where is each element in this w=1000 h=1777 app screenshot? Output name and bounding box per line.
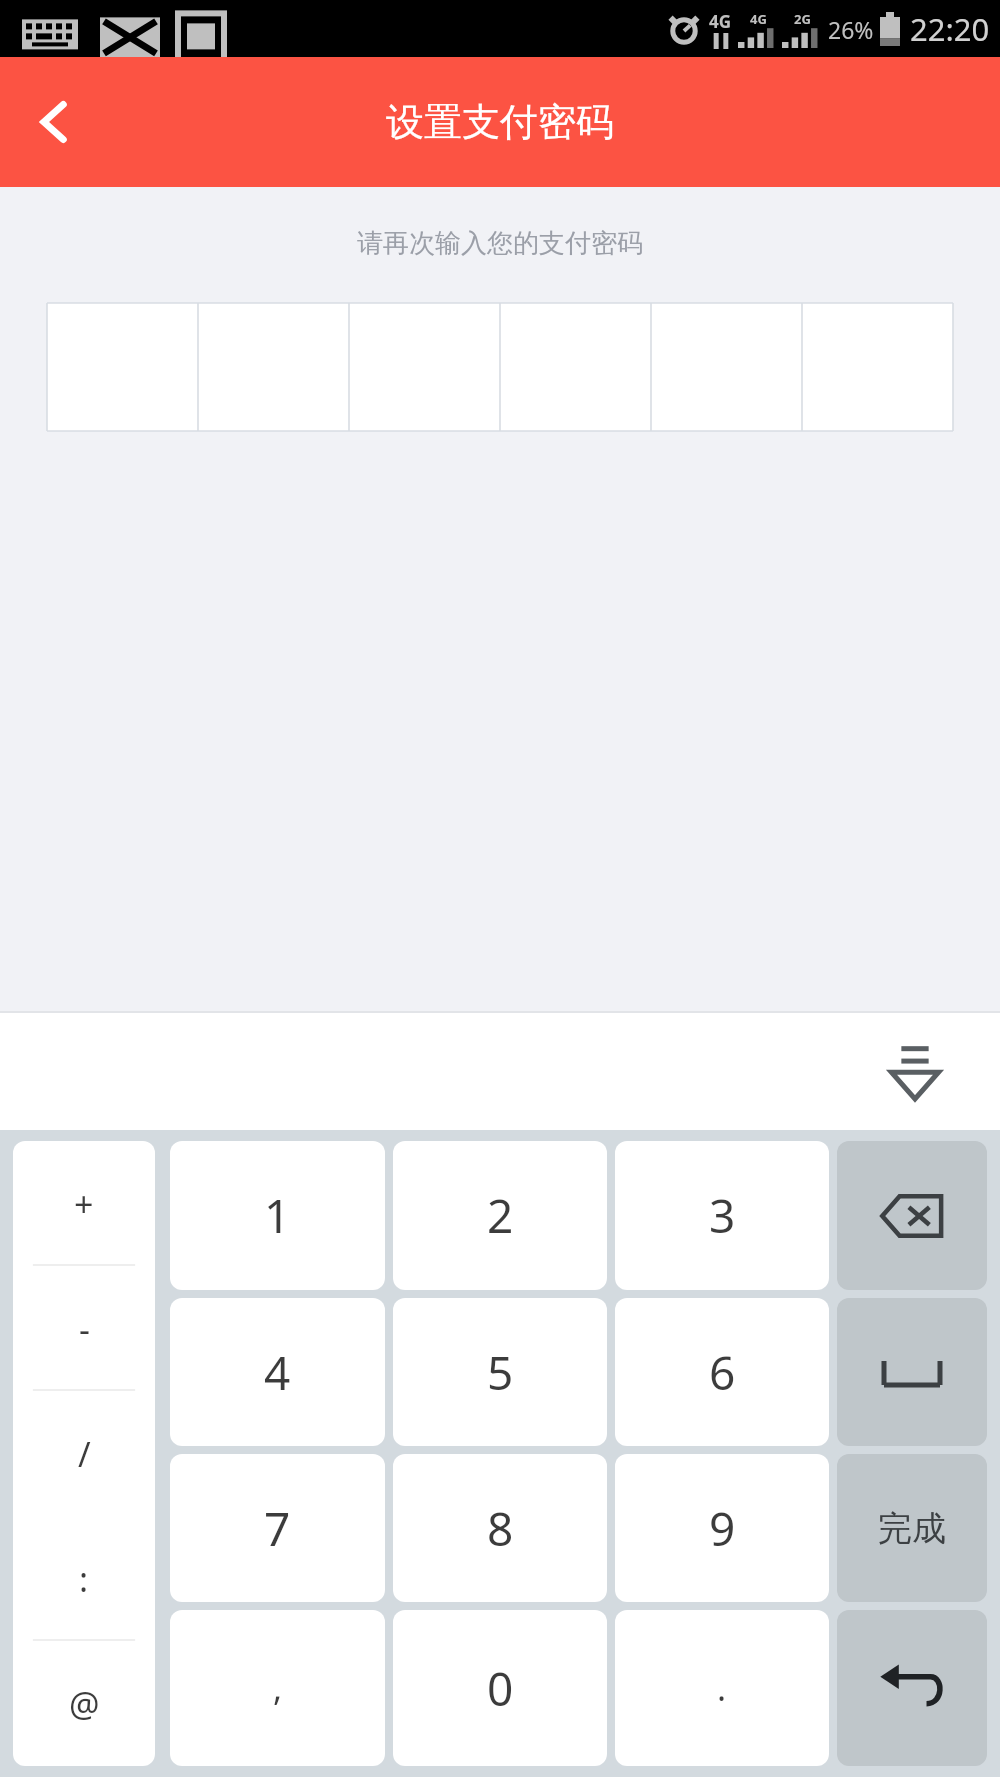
button[interactable]: 0 [393,1610,607,1766]
button[interactable]: 8 [393,1454,607,1602]
staticText: 8 [487,1497,514,1560]
button[interactable]: : [13,1516,155,1641]
button[interactable]: Backspace [837,1141,987,1290]
button[interactable]: 4 [170,1298,385,1446]
button[interactable]: 7 [170,1454,385,1602]
button[interactable]: 9 [615,1454,829,1602]
staticText: 4G [709,10,732,33]
button[interactable]: + [13,1141,155,1266]
button[interactable]: - [13,1266,155,1391]
button[interactable] [47,303,198,431]
button[interactable]: , [170,1610,385,1766]
staticText: 设置支付密码 [386,98,614,146]
staticText: 完成 [878,1507,946,1550]
staticText: 9 [709,1497,736,1560]
staticText: 5 [487,1341,514,1404]
staticText: @ [69,1681,100,1727]
staticText: 2G [794,10,811,28]
staticText: 6 [709,1341,736,1404]
button[interactable]: 完成 [837,1454,987,1602]
staticText: 7 [264,1497,291,1560]
staticText: 请再次输入您的支付密码 [0,227,1000,260]
staticText: , [273,1665,283,1711]
staticText: 2 [487,1184,514,1247]
staticText: 22:20 [910,8,990,50]
button[interactable]: . [615,1610,829,1766]
staticText: 1 [264,1184,291,1247]
staticText: 26% [828,14,874,45]
staticText: : [79,1556,89,1602]
staticText: . [717,1665,727,1711]
button[interactable]: 2 [393,1141,607,1290]
button[interactable]: Back [0,67,110,177]
staticText: 3 [709,1184,736,1247]
staticText: - [79,1306,90,1352]
staticText: 4G [750,10,767,28]
button[interactable]: Enter [837,1610,987,1766]
button[interactable]: 6 [615,1298,829,1446]
button[interactable]: Hide keyboard [870,1026,960,1116]
staticText: + [74,1181,94,1227]
button[interactable] [198,303,349,431]
button[interactable]: 5 [393,1298,607,1446]
button[interactable] [651,303,802,431]
staticText: 0 [487,1657,514,1720]
button[interactable] [802,303,953,431]
button[interactable]: @ [13,1641,155,1766]
button[interactable]: / [13,1391,155,1516]
button[interactable]: 1 [170,1141,385,1290]
button[interactable]: Space [837,1298,987,1446]
button[interactable] [349,303,500,431]
button[interactable] [500,303,651,431]
staticText: 4 [264,1341,291,1404]
staticText: / [78,1431,91,1477]
button[interactable]: 3 [615,1141,829,1290]
